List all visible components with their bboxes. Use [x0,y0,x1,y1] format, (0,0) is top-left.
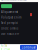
staticText: 1.234 [1,47,10,50]
staticText: Aliquam erat [1,10,18,14]
staticText: Unde omnis [1,27,18,30]
staticText: Iste natus err [1,32,19,36]
staticText: Total [1,44,7,47]
staticText: Volutpat enim [1,16,21,19]
staticText: elit sed do eiusmod tempor incididunt ut… [1,0,27,1]
button[interactable]: Continuar [20,45,37,50]
staticText: Sed perspici [1,21,18,25]
staticText: Continuar [21,46,35,49]
